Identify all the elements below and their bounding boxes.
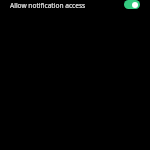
button[interactable]: Allow notification access toggle, on bbox=[124, 0, 140, 9]
button[interactable]: Allow notification access bbox=[0, 0, 150, 11]
staticText: Allow notification access bbox=[10, 1, 86, 10]
